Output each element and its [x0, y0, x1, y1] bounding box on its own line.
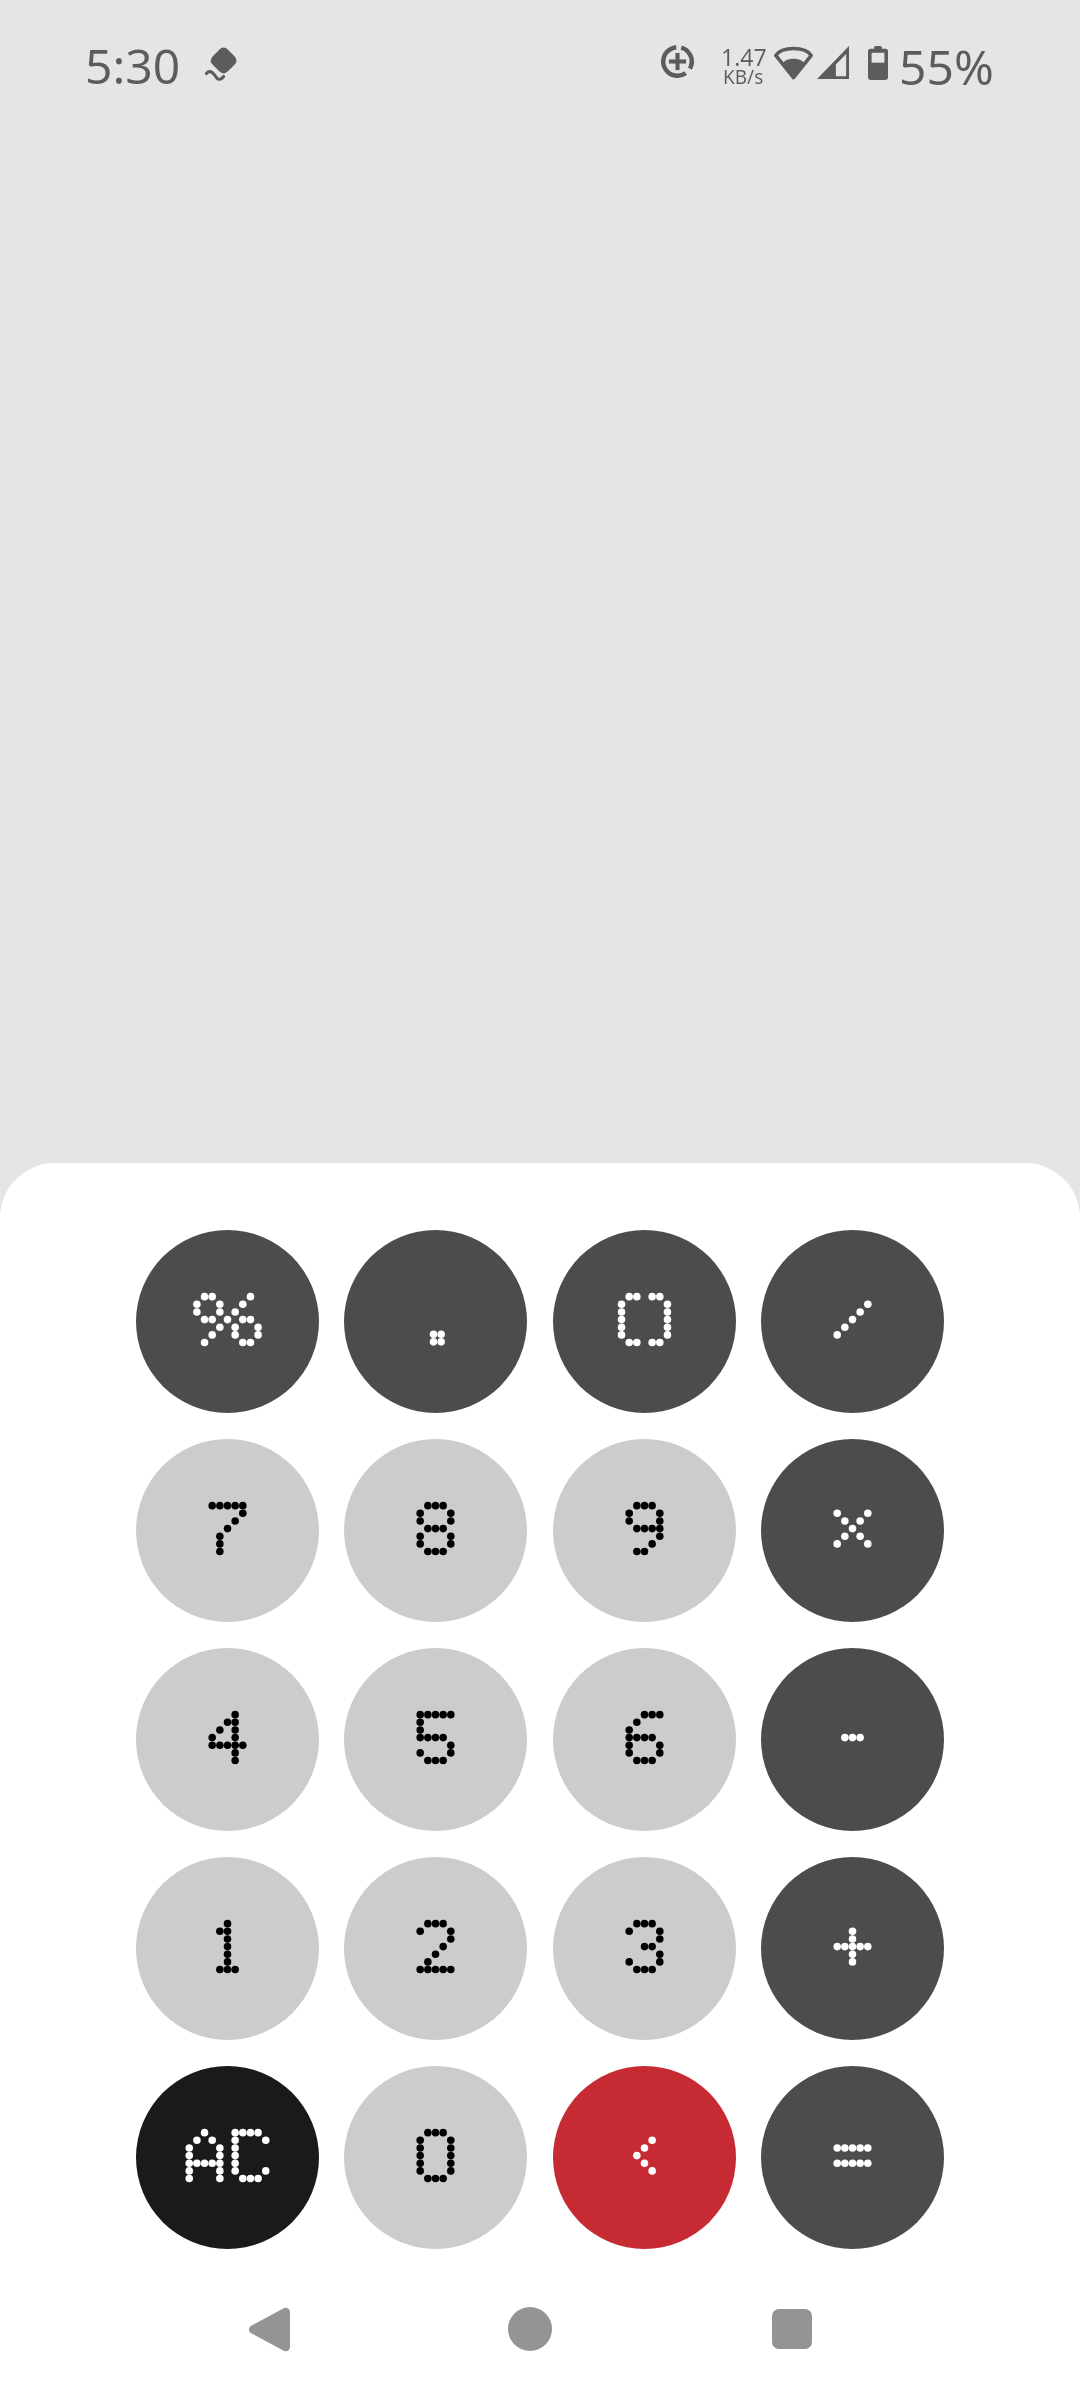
button[interactable]: 7: [136, 1439, 319, 1622]
button[interactable]: backspace: [553, 2066, 736, 2249]
button[interactable]: minus: [761, 1648, 944, 1831]
button[interactable]: 0: [344, 2066, 527, 2249]
button[interactable]: parentheses: [553, 1230, 736, 1413]
button[interactable]: Recents: [731, 2285, 851, 2375]
staticText: 1.47: [721, 41, 767, 72]
button[interactable]: AC: [136, 2066, 319, 2249]
button[interactable]: plus: [761, 1857, 944, 2040]
button[interactable]: Home: [470, 2285, 590, 2375]
button[interactable]: decimal point: [344, 1230, 527, 1413]
button[interactable]: 2: [344, 1857, 527, 2040]
button[interactable]: percent: [136, 1230, 319, 1413]
button[interactable]: 6: [553, 1648, 736, 1831]
button[interactable]: 5: [344, 1648, 527, 1831]
button[interactable]: 9: [553, 1439, 736, 1622]
button[interactable]: 1: [136, 1857, 319, 2040]
button[interactable]: Back: [210, 2285, 330, 2375]
staticText: 55%: [899, 34, 994, 99]
button[interactable]: 3: [553, 1857, 736, 2040]
button[interactable]: divide: [761, 1230, 944, 1413]
button[interactable]: multiply: [761, 1439, 944, 1622]
button[interactable]: 4: [136, 1648, 319, 1831]
button[interactable]: 8: [344, 1439, 527, 1622]
staticText: KB/s: [723, 64, 764, 90]
staticText: 5:30: [85, 33, 181, 98]
button[interactable]: equals: [761, 2066, 944, 2249]
